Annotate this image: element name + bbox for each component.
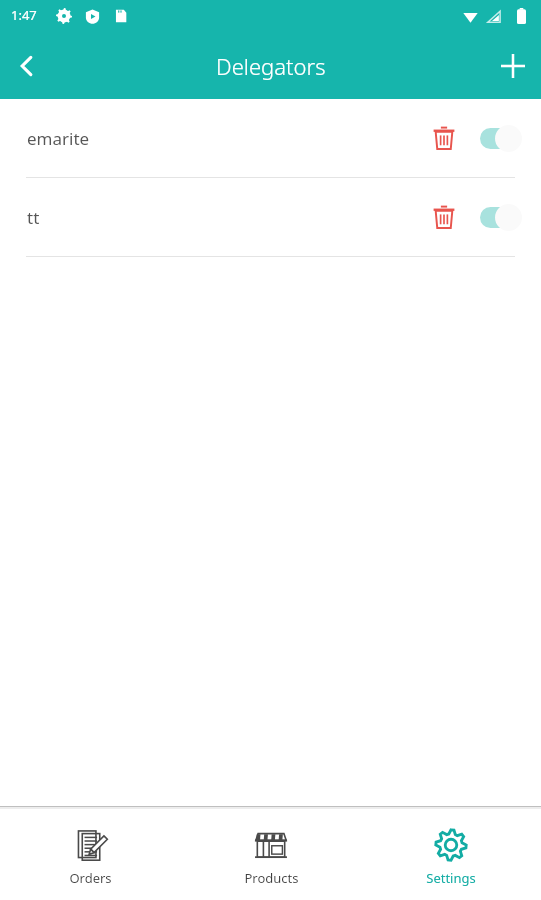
staticText: Orders xyxy=(69,869,112,887)
button[interactable]: Toggle emarite xyxy=(474,116,528,160)
staticText: Products xyxy=(244,869,299,887)
staticText: Delegators xyxy=(216,51,326,81)
staticText: Settings xyxy=(426,869,476,887)
staticText: tt xyxy=(27,206,420,229)
button[interactable]: Back xyxy=(0,39,54,93)
button[interactable]: Delete tt xyxy=(420,193,468,241)
staticText: emarite xyxy=(27,127,420,150)
button[interactable]: Toggle tt xyxy=(474,195,528,239)
button[interactable]: Settings xyxy=(361,822,541,887)
button[interactable]: Products xyxy=(181,822,361,887)
button[interactable]: Add delegator xyxy=(485,38,541,94)
button[interactable]: Orders xyxy=(0,822,181,887)
staticText: 1:47 xyxy=(11,6,37,24)
button[interactable]: Delete emarite xyxy=(420,114,468,162)
button[interactable]: emarite xyxy=(0,99,541,177)
button[interactable]: tt xyxy=(0,178,541,256)
